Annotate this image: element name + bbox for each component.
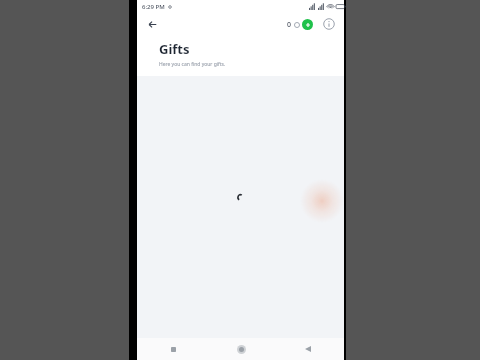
staticText: 6:29 PM <box>142 3 165 11</box>
button[interactable]: 0 <box>285 17 315 32</box>
staticText: 0 <box>287 20 292 30</box>
button[interactable]: Back <box>300 341 316 357</box>
button[interactable]: Home <box>233 341 249 357</box>
staticText: Here you can find your gifts. <box>159 61 226 68</box>
staticText: Gifts <box>159 40 190 58</box>
button[interactable]: Recents <box>165 341 181 357</box>
button[interactable]: Info <box>320 15 338 33</box>
button[interactable]: Back <box>143 15 161 33</box>
